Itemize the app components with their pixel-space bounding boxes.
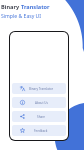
button[interactable]: Share xyxy=(12,111,66,122)
button[interactable]: About Us xyxy=(12,97,66,108)
staticText: Binary Translator xyxy=(29,87,54,91)
button[interactable]: Binary Translator xyxy=(12,83,66,94)
staticText: Translator xyxy=(21,3,50,11)
staticText: Share xyxy=(37,115,46,119)
staticText: Simple & Easy UI xyxy=(1,13,42,20)
staticText: Feedback xyxy=(34,129,48,133)
button[interactable]: Feedback xyxy=(12,125,66,136)
staticText: Binary xyxy=(1,3,21,11)
staticText: About Us xyxy=(35,101,48,105)
